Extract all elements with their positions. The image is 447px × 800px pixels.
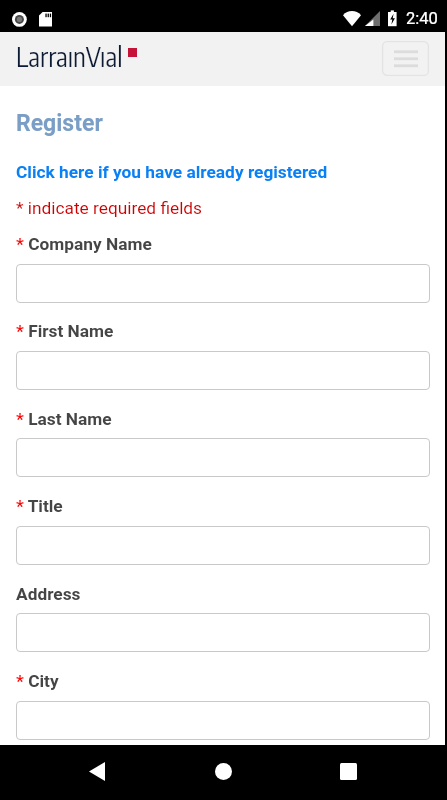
staticText: * First Name [16,321,114,341]
staticText: Register [16,110,103,137]
staticText: * Company Name [16,234,152,254]
staticText: * Last Name [16,409,112,429]
staticText: * Title [16,496,63,516]
button[interactable] [16,526,430,565]
button[interactable]: Back [64,747,130,796]
button[interactable]: Recent apps [315,747,381,796]
button[interactable]: Click here if you have already registere… [16,160,328,184]
staticText: 2:40 [406,9,438,28]
button[interactable] [16,351,430,390]
staticText: Address [16,584,81,604]
staticText: LarraınVıal [16,40,123,73]
button[interactable] [16,613,430,652]
staticText: * indicate required fields [16,198,203,218]
button[interactable]: Home [190,747,256,796]
button[interactable]: Open navigation menu [382,41,429,76]
staticText: * City [16,671,59,691]
staticText: Click here if you have already registere… [16,162,328,182]
button[interactable] [16,438,430,477]
button[interactable] [16,264,430,303]
button[interactable] [16,701,430,740]
